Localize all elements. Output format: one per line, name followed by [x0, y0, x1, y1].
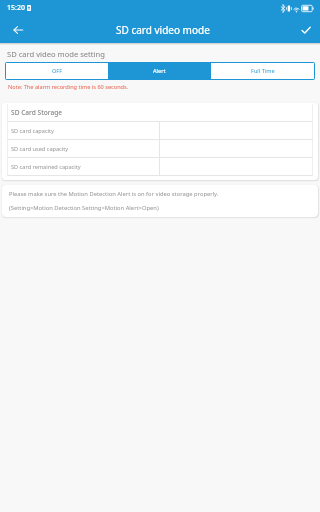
- staticText: Note: The alarm recording time is 60 sec…: [8, 83, 129, 91]
- staticText: Full Time: [251, 67, 275, 75]
- staticText: SD card video mode: [116, 23, 210, 37]
- button[interactable]: Alert: [108, 63, 211, 79]
- staticText: SD card used capacity: [11, 145, 69, 153]
- button[interactable]: Full Time: [211, 63, 314, 79]
- staticText: OFF: [52, 67, 63, 75]
- staticText: SD Card Storage: [11, 108, 63, 117]
- staticText: (Setting>Motion Detection Setting>Motion…: [9, 204, 159, 212]
- button[interactable]: Confirm: [294, 18, 318, 42]
- staticText: SD card capacity: [11, 127, 54, 135]
- button[interactable]: Back: [6, 18, 30, 42]
- staticText: 15:20: [7, 3, 25, 13]
- staticText: SD card remained capacity: [11, 163, 81, 171]
- staticText: Please make sure the Motion Detection Al…: [9, 190, 219, 198]
- button[interactable]: OFF: [6, 63, 108, 79]
- staticText: Alert: [153, 67, 166, 75]
- staticText: SD card video mode setting: [7, 49, 105, 59]
